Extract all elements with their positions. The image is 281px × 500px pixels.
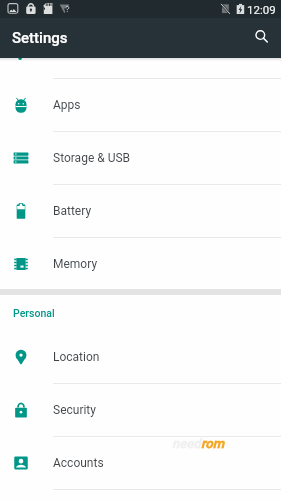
- button[interactable]: Storage & USB: [0, 132, 281, 184]
- button[interactable]: Location: [0, 331, 281, 383]
- staticText: Settings: [12, 29, 68, 47]
- staticText: Battery: [53, 204, 92, 218]
- staticText: Apps: [53, 98, 81, 112]
- staticText: Accounts: [53, 456, 104, 470]
- button[interactable]: Security: [0, 384, 281, 436]
- staticText: Location: [53, 350, 100, 364]
- staticText: 12:09: [247, 3, 276, 16]
- staticText: Storage & USB: [53, 151, 131, 165]
- staticText: Personal: [13, 307, 55, 319]
- button[interactable]: Accounts: [0, 437, 281, 489]
- staticText: need: [172, 436, 201, 451]
- staticText: rom: [201, 436, 225, 451]
- button[interactable]: Battery: [0, 185, 281, 237]
- button[interactable]: Apps: [0, 79, 281, 131]
- button[interactable]: Search: [249, 24, 275, 50]
- button[interactable]: Memory: [0, 238, 281, 289]
- staticText: Security: [53, 403, 96, 417]
- staticText: Memory: [53, 257, 98, 271]
